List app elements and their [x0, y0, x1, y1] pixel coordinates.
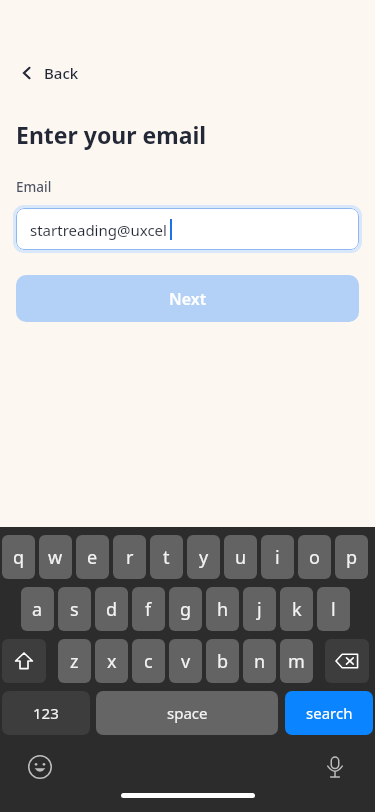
staticText: search [306, 703, 353, 723]
staticText: l [331, 597, 336, 622]
staticText: k [292, 597, 302, 622]
button[interactable]: Emoji [22, 749, 58, 785]
button[interactable]: w [39, 535, 72, 579]
button[interactable]: r [113, 535, 146, 579]
button[interactable]: q [2, 535, 35, 579]
button[interactable]: search [285, 691, 373, 735]
button[interactable]: n [243, 639, 276, 683]
button[interactable]: Next [16, 275, 359, 322]
staticText: w [48, 545, 63, 570]
staticText: Enter your email [16, 119, 207, 150]
button[interactable]: x [95, 639, 128, 683]
button[interactable]: 123 [2, 691, 90, 735]
button[interactable]: z [58, 639, 91, 683]
button[interactable]: l [317, 587, 350, 631]
button[interactable]: Back [12, 58, 85, 88]
staticText: q [13, 545, 25, 570]
staticText: Back [44, 63, 79, 83]
staticText: a [32, 597, 43, 622]
staticText: s [70, 597, 79, 622]
staticText: Email [16, 178, 52, 196]
button[interactable]: m [280, 639, 313, 683]
button[interactable]: k [280, 587, 313, 631]
staticText: h [217, 597, 229, 622]
button[interactable]: Shift [2, 639, 46, 683]
staticText: o [309, 545, 320, 570]
staticText: m [288, 649, 305, 674]
button[interactable]: Backspace [325, 639, 369, 683]
button[interactable]: i [261, 535, 294, 579]
button[interactable]: t [150, 535, 183, 579]
button[interactable]: a [21, 587, 54, 631]
staticText: v [181, 649, 191, 674]
button[interactable]: j [243, 587, 276, 631]
button[interactable]: d [95, 587, 128, 631]
staticText: d [106, 597, 118, 622]
button[interactable]: space [96, 691, 278, 735]
staticText: j [257, 597, 262, 622]
staticText: r [126, 545, 134, 570]
button[interactable]: g [169, 587, 202, 631]
button[interactable]: startreading@uxcel [16, 208, 359, 250]
button[interactable]: p [335, 535, 368, 579]
button[interactable]: h [206, 587, 239, 631]
staticText: Next [169, 288, 207, 310]
staticText: i [275, 545, 280, 570]
staticText: n [254, 649, 266, 674]
staticText: c [144, 649, 153, 674]
staticText: startreading@uxcel [30, 220, 167, 240]
button[interactable]: e [76, 535, 109, 579]
staticText: f [145, 597, 152, 622]
staticText: 123 [33, 703, 59, 723]
staticText: e [87, 545, 98, 570]
button[interactable]: f [132, 587, 165, 631]
staticText: x [107, 649, 117, 674]
staticText: space [167, 703, 208, 723]
button[interactable]: o [298, 535, 331, 579]
staticText: u [235, 545, 247, 570]
button[interactable]: c [132, 639, 165, 683]
button[interactable]: u [224, 535, 257, 579]
staticText: b [217, 649, 229, 674]
staticText: y [199, 545, 209, 570]
button[interactable]: b [206, 639, 239, 683]
button[interactable]: y [187, 535, 220, 579]
staticText: z [70, 649, 79, 674]
staticText: t [163, 545, 170, 570]
button[interactable]: Voice input [317, 749, 353, 785]
staticText: g [180, 597, 192, 622]
button[interactable]: s [58, 587, 91, 631]
button[interactable]: v [169, 639, 202, 683]
staticText: p [346, 545, 358, 570]
